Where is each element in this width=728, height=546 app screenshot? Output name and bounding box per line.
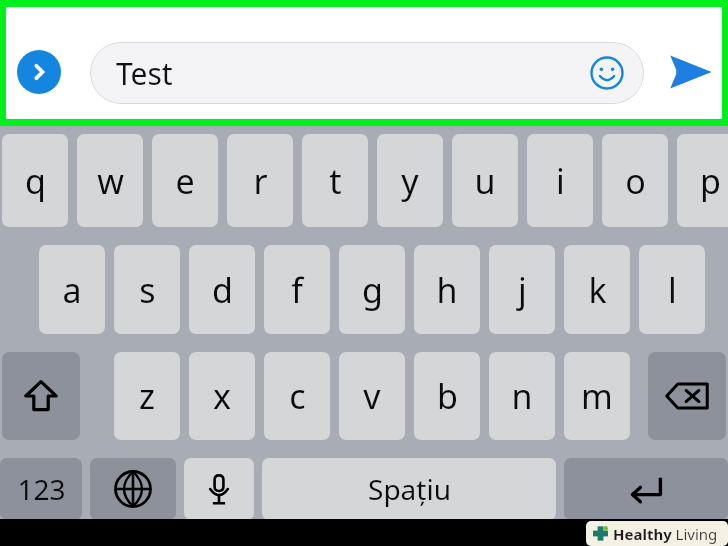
staticText: m: [581, 373, 613, 419]
staticText: t: [329, 158, 342, 204]
button[interactable]: q: [2, 134, 68, 227]
button[interactable]: t: [302, 134, 368, 227]
button[interactable]: Numbers: [0, 458, 82, 520]
button[interactable]: d: [189, 245, 255, 334]
button[interactable]: g: [339, 245, 405, 334]
staticText: Spațiu: [368, 470, 451, 508]
button[interactable]: Send: [664, 46, 716, 98]
staticText: f: [291, 267, 303, 313]
button[interactable]: Test: [90, 42, 644, 104]
button[interactable]: p: [677, 134, 728, 227]
button[interactable]: f: [264, 245, 330, 334]
button[interactable]: i: [527, 134, 593, 227]
button[interactable]: Voice input: [184, 458, 254, 520]
button[interactable]: l: [639, 245, 705, 334]
staticText: j: [518, 267, 527, 313]
button[interactable]: e: [152, 134, 218, 227]
staticText: w: [97, 158, 124, 204]
staticText: p: [700, 158, 721, 204]
button[interactable]: s: [114, 245, 180, 334]
button[interactable]: Backspace: [648, 352, 726, 440]
staticText: y: [401, 158, 419, 204]
button[interactable]: v: [339, 352, 405, 440]
button[interactable]: Expand options: [17, 50, 61, 94]
button[interactable]: a: [39, 245, 105, 334]
button[interactable]: n: [489, 352, 555, 440]
staticText: r: [253, 158, 268, 204]
staticText: u: [474, 158, 496, 204]
button[interactable]: Change language: [90, 458, 176, 520]
button[interactable]: r: [227, 134, 293, 227]
button[interactable]: u: [452, 134, 518, 227]
button[interactable]: Emoji: [588, 54, 626, 92]
button[interactable]: c: [264, 352, 330, 440]
staticText: c: [289, 373, 306, 419]
staticText: z: [139, 373, 155, 419]
staticText: q: [25, 158, 46, 204]
button[interactable]: Shift: [2, 352, 80, 440]
staticText: e: [175, 158, 195, 204]
button[interactable]: b: [414, 352, 480, 440]
button[interactable]: z: [114, 352, 180, 440]
button[interactable]: m: [564, 352, 630, 440]
button[interactable]: Spațiu: [262, 458, 556, 520]
staticText: d: [212, 267, 233, 313]
staticText: g: [362, 267, 383, 313]
button[interactable]: k: [564, 245, 630, 334]
staticText: n: [511, 373, 533, 419]
staticText: l: [668, 267, 677, 313]
staticText: i: [556, 158, 565, 204]
staticText: Test: [116, 53, 173, 94]
staticText: Healthy Living: [613, 524, 718, 544]
staticText: a: [62, 267, 82, 313]
button[interactable]: y: [377, 134, 443, 227]
button[interactable]: j: [489, 245, 555, 334]
button[interactable]: Return: [564, 458, 728, 520]
staticText: x: [213, 373, 231, 419]
staticText: h: [436, 267, 458, 313]
staticText: 123: [17, 470, 66, 508]
button[interactable]: h: [414, 245, 480, 334]
staticText: b: [437, 373, 458, 419]
staticText: s: [139, 267, 156, 313]
staticText: k: [588, 267, 607, 313]
button[interactable]: w: [77, 134, 143, 227]
staticText: v: [363, 373, 381, 419]
staticText: o: [625, 158, 646, 204]
button[interactable]: o: [602, 134, 668, 227]
button[interactable]: x: [189, 352, 255, 440]
